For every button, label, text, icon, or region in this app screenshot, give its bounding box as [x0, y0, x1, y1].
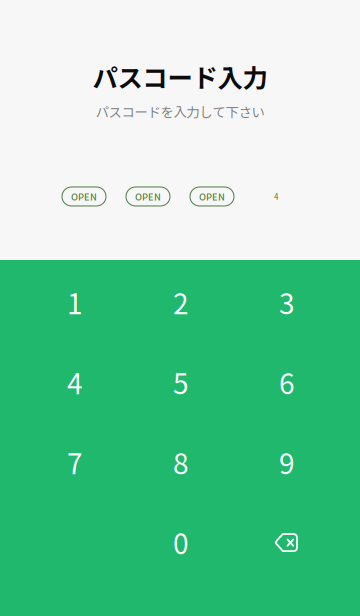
staticText: 8 — [173, 442, 189, 482]
staticText: 0 — [173, 522, 189, 562]
staticText: 4 — [274, 191, 278, 202]
staticText: 3 — [279, 282, 295, 322]
button[interactable]: 8 — [128, 422, 234, 502]
button[interactable]: 5 — [128, 342, 234, 422]
button[interactable]: 1 — [22, 262, 128, 342]
staticText: OPEN — [71, 190, 97, 203]
button[interactable]: 2 — [128, 262, 234, 342]
staticText: パスコード入力 — [92, 58, 267, 95]
button[interactable]: 6 — [234, 342, 340, 422]
staticText: OPEN — [135, 190, 161, 203]
button[interactable]: 9 — [234, 422, 340, 502]
staticText: OPEN — [199, 190, 225, 203]
button[interactable]: Delete — [234, 502, 340, 582]
button[interactable]: 4 — [22, 342, 128, 422]
staticText: 9 — [279, 442, 295, 482]
staticText: 6 — [279, 362, 295, 402]
staticText: 1 — [67, 282, 83, 322]
staticText: 7 — [67, 442, 83, 482]
button[interactable]: 7 — [22, 422, 128, 502]
staticText: 5 — [173, 362, 189, 402]
button[interactable]: 0 — [128, 502, 234, 582]
staticText: 2 — [173, 282, 189, 322]
staticText: 4 — [67, 362, 83, 402]
button[interactable]: 3 — [234, 262, 340, 342]
staticText: パスコードを入力して下さい — [95, 102, 264, 121]
